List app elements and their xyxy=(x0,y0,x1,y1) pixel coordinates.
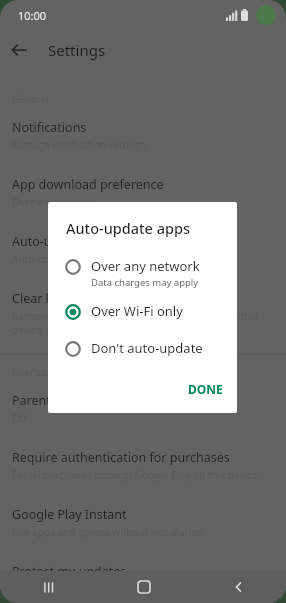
button[interactable]: Require authentication for purchases xyxy=(0,440,286,491)
button[interactable]: Protect my updates xyxy=(0,554,286,589)
staticText: 10:00 xyxy=(18,8,47,23)
staticText: User controls xyxy=(12,365,75,379)
staticText: Settings xyxy=(48,40,106,60)
button[interactable]: Account xyxy=(256,5,276,25)
button[interactable]: Recents xyxy=(0,571,96,603)
staticText: Auto-update apps over Wi-Fi only xyxy=(12,252,168,266)
button[interactable]: Home xyxy=(96,571,191,603)
button[interactable]: Parental controls xyxy=(0,383,286,434)
staticText: Notifications xyxy=(12,119,87,136)
button[interactable]: Clear local search history xyxy=(0,281,286,346)
button[interactable]: Don't auto-update apps xyxy=(48,334,237,363)
button[interactable]: Auto-update apps xyxy=(0,224,286,275)
staticText: Auto-update apps xyxy=(66,218,190,238)
staticText: Clear local search history xyxy=(12,290,159,307)
staticText: Data charges may apply xyxy=(91,276,199,289)
staticText: Over Wi-Fi only xyxy=(91,302,183,320)
staticText: Auto-update apps xyxy=(12,233,118,250)
staticText: Parental controls xyxy=(12,392,112,409)
staticText: Over any network xyxy=(12,195,96,209)
button[interactable]: Notifications xyxy=(0,110,286,161)
staticText: App download preference xyxy=(12,176,164,193)
button[interactable]: Over any network xyxy=(48,252,237,294)
staticText: Google Play Instant xyxy=(12,506,127,523)
staticText: Require authentication for purchases xyxy=(12,449,230,466)
button[interactable]: Google Play Instant xyxy=(0,497,286,548)
staticText: Protect my updates xyxy=(12,563,127,580)
staticText: Over any network xyxy=(91,257,200,275)
button[interactable]: Back xyxy=(0,31,38,69)
button[interactable]: Back xyxy=(191,571,286,603)
button[interactable]: DONE xyxy=(174,375,237,403)
staticText: DONE xyxy=(188,381,223,397)
staticText: Don't auto-update apps xyxy=(91,339,221,357)
staticText: Remove all the searches you have perform… xyxy=(12,309,274,337)
button[interactable]: App download preference xyxy=(0,167,286,218)
button[interactable]: Over Wi-Fi only xyxy=(48,297,237,326)
